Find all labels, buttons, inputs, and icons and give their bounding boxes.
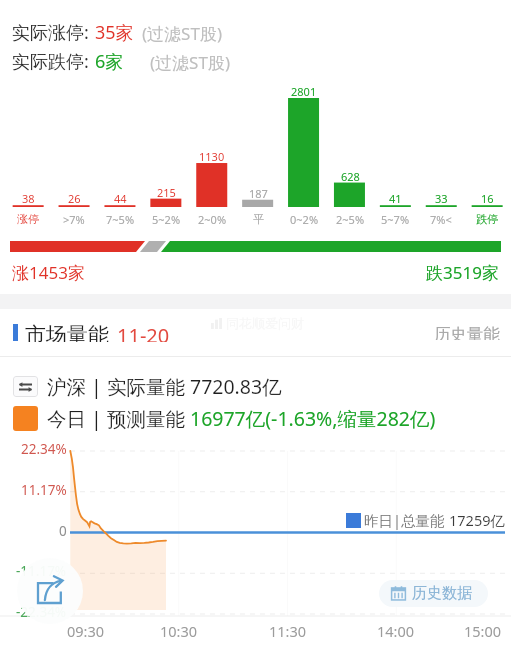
staticText: 215 — [157, 185, 176, 200]
staticText: 11:30 — [269, 621, 307, 641]
staticText: 平 — [253, 212, 264, 226]
staticText: 实际跌停: — [12, 49, 89, 74]
staticText: -22.34% — [16, 603, 67, 621]
staticText: 2801 — [291, 84, 317, 99]
staticText: 沪深 | 实际量能 — [47, 373, 190, 400]
staticText: 7720.83亿 — [190, 373, 282, 400]
staticText: 17259亿 — [449, 510, 505, 530]
staticText: 38 — [22, 191, 35, 206]
staticText: 16 — [481, 191, 494, 206]
staticText: 41 — [389, 191, 402, 206]
staticText: 16977亿(-1.63%,缩量282亿) — [190, 405, 436, 432]
staticText: 44 — [114, 191, 127, 206]
staticText: (过滤ST股) — [150, 51, 230, 74]
staticText: 跌停 — [476, 212, 498, 226]
staticText: 187 — [249, 186, 268, 201]
staticText: 市场量能 — [25, 322, 109, 342]
staticText: 2~5% — [336, 212, 365, 227]
staticText: -11.17% — [16, 562, 67, 580]
button[interactable]: 切换市场 — [13, 376, 38, 397]
staticText: 7~5% — [106, 212, 135, 227]
staticText: 22.34% — [21, 440, 67, 458]
staticText: 跌3519家 — [426, 261, 499, 284]
staticText: 7%< — [430, 212, 452, 227]
staticText: 2~0% — [198, 212, 227, 227]
button[interactable]: 分享 — [17, 558, 83, 624]
staticText: 涨1453家 — [12, 261, 85, 284]
staticText: 6家 — [95, 49, 124, 74]
staticText: (过滤ST股) — [142, 22, 222, 45]
staticText: 昨日|总量能 — [364, 510, 449, 530]
button[interactable]: 历史数据 — [379, 580, 488, 607]
staticText: 0 — [59, 522, 67, 540]
staticText: 涨停 — [17, 212, 39, 226]
staticText: 33 — [435, 191, 448, 206]
staticText: 1130 — [199, 149, 225, 164]
staticText: 11-20 — [117, 322, 170, 342]
staticText: 0~2% — [290, 212, 319, 227]
staticText: 14:00 — [377, 621, 415, 641]
staticText: 628 — [341, 169, 360, 184]
staticText: 历史量能 — [434, 324, 500, 340]
button[interactable]: 历史量能 — [420, 320, 511, 344]
staticText: 11.17% — [21, 481, 67, 499]
staticText: 实际涨停: — [12, 20, 89, 45]
staticText: 10:30 — [160, 621, 198, 641]
staticText: 同花顺爱问财 — [226, 315, 304, 331]
staticText: 35家 — [95, 20, 134, 45]
staticText: 历史数据 — [412, 584, 472, 603]
staticText: 15:00 — [464, 621, 502, 641]
staticText: 5~7% — [381, 212, 410, 227]
staticText: 5~2% — [152, 212, 181, 227]
staticText: 今日 | 预测量能 — [47, 405, 190, 432]
staticText: 26 — [68, 191, 81, 206]
staticText: 09:30 — [67, 621, 105, 641]
staticText: >7% — [63, 212, 85, 227]
